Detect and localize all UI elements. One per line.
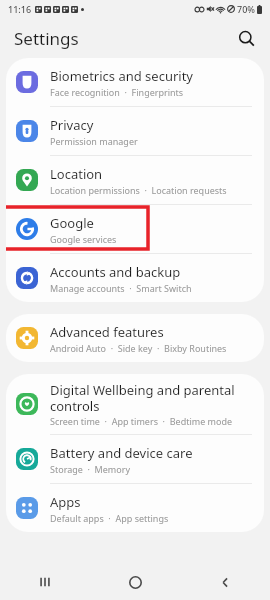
button[interactable]: Biometrics and security bbox=[6, 58, 264, 107]
staticText: Location bbox=[50, 165, 103, 183]
button[interactable]: Search bbox=[232, 24, 260, 52]
staticText: Manage accounts · Smart Switch bbox=[50, 282, 192, 294]
staticText: Accounts and backup bbox=[50, 263, 181, 281]
staticText: Advanced features bbox=[50, 323, 164, 341]
staticText: Privacy bbox=[50, 116, 94, 134]
staticText: Permission manager bbox=[50, 135, 138, 147]
button[interactable]: Battery and device care bbox=[6, 435, 264, 484]
button[interactable]: Advanced features bbox=[6, 314, 264, 362]
staticText: Location permissions · Location requests bbox=[50, 184, 227, 196]
staticText: Biometrics and security bbox=[50, 67, 194, 85]
button[interactable]: Location bbox=[6, 156, 264, 205]
staticText: Default apps · App settings bbox=[50, 512, 169, 524]
staticText: 70% bbox=[237, 3, 255, 15]
staticText: Battery and device care bbox=[50, 444, 193, 462]
staticText: Digital Wellbeing and parental controls bbox=[50, 381, 252, 414]
staticText: Apps bbox=[50, 493, 81, 511]
staticText: Google services bbox=[50, 233, 117, 245]
button[interactable]: Home bbox=[90, 564, 180, 600]
button[interactable]: Apps bbox=[6, 484, 264, 532]
staticText: Android Auto · Side key · Bixby Routines bbox=[50, 342, 227, 354]
button[interactable]: Privacy bbox=[6, 107, 264, 156]
button[interactable]: Digital Wellbeing and parental controls bbox=[6, 374, 264, 435]
staticText: Storage · Memory bbox=[50, 463, 131, 475]
button[interactable]: Google bbox=[6, 205, 264, 254]
staticText: Screen time · App timers · Bedtime mode bbox=[50, 415, 233, 427]
button[interactable]: Back bbox=[180, 564, 270, 600]
staticText: Settings bbox=[14, 27, 79, 50]
button[interactable]: Recents bbox=[0, 564, 90, 600]
staticText: 11:16 bbox=[8, 3, 32, 15]
button[interactable]: Accounts and backup bbox=[6, 254, 264, 302]
staticText: Google bbox=[50, 214, 94, 232]
staticText: Face recognition · Fingerprints bbox=[50, 86, 184, 98]
